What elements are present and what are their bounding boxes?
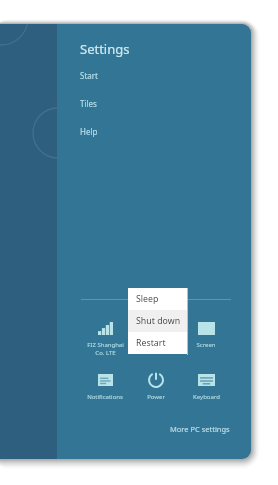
button[interactable]: Help — [74, 123, 144, 139]
staticText: Keyboard — [193, 393, 220, 401]
staticText: Notifications — [87, 393, 123, 401]
staticText: FIZ Shanghai Co. LTE — [87, 341, 124, 357]
button[interactable]: Shut down — [128, 310, 188, 332]
staticText: Tiles — [80, 98, 97, 109]
button[interactable]: Sleep — [128, 288, 188, 310]
button[interactable]: Tiles — [74, 95, 144, 111]
staticText: More PC settings — [170, 424, 230, 434]
staticText: Power — [147, 393, 165, 401]
staticText: Shut down — [136, 315, 181, 327]
staticText: Help — [80, 126, 98, 137]
button[interactable]: Screen — [180, 318, 232, 349]
staticText: Settings — [80, 40, 130, 58]
button[interactable]: Keyboard — [180, 370, 232, 401]
button[interactable]: Power — [130, 370, 182, 401]
staticText: Screen — [196, 341, 216, 349]
staticText: Sleep — [136, 293, 159, 305]
button[interactable]: Notifications — [79, 370, 131, 401]
button[interactable]: Restart — [128, 332, 188, 354]
staticText: Start — [80, 70, 98, 81]
staticText: Restart — [136, 337, 166, 349]
button[interactable]: Start — [74, 67, 144, 83]
button[interactable]: FIZ Shanghai Co. LTE — [79, 318, 131, 357]
button[interactable]: More PC settings — [168, 422, 232, 436]
